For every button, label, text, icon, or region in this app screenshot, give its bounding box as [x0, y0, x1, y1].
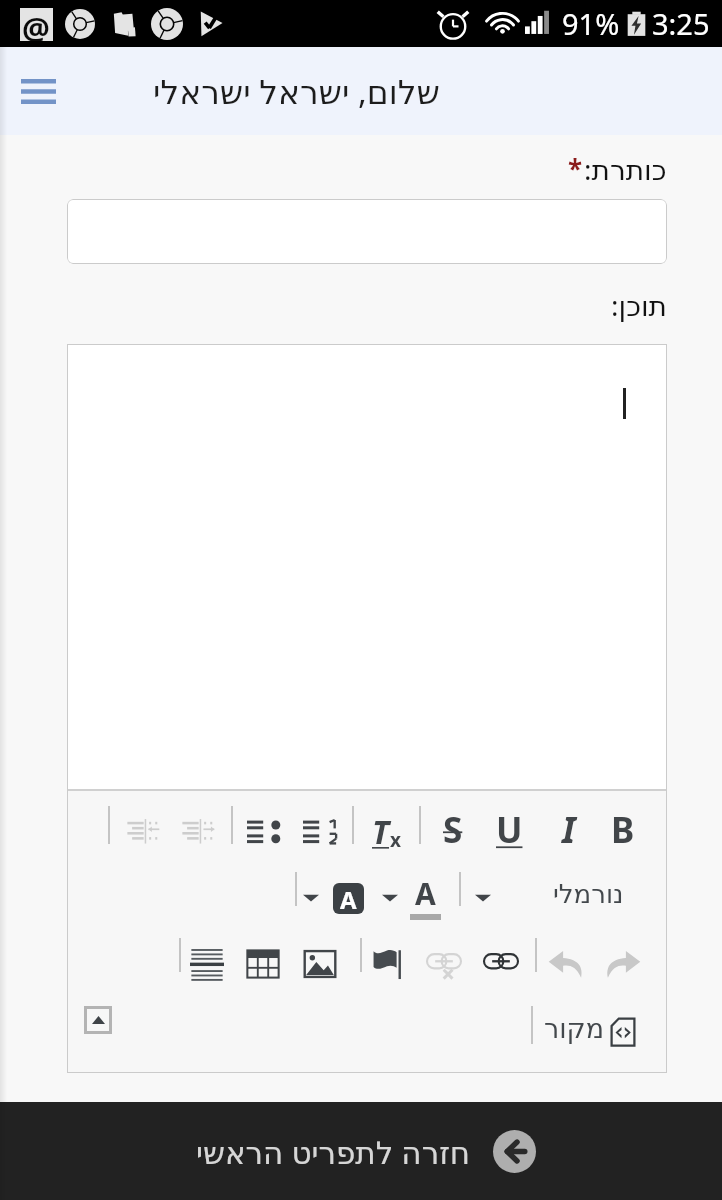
button[interactable]: Strikethrough: [427, 806, 479, 858]
staticText: :תוכן: [611, 286, 667, 324]
button[interactable]: Underline: [483, 806, 535, 858]
staticText: @: [22, 7, 50, 41]
button[interactable]: Unlink: [418, 938, 470, 990]
staticText: 3:25: [652, 4, 710, 43]
other: Back to main menu: [493, 1130, 536, 1173]
button[interactable]: Paragraph format options: [457, 872, 509, 924]
staticText: A: [415, 873, 436, 914]
staticText: מקור: [544, 1013, 605, 1044]
button[interactable]: מקור: [529, 1006, 619, 1050]
button[interactable]: Text color: [399, 872, 451, 924]
button[interactable]: Source: [597, 1006, 649, 1058]
staticText: :כותרת: [584, 150, 667, 188]
staticText: T: [372, 810, 390, 854]
button[interactable]: Redo: [597, 938, 649, 990]
button[interactable]: Open navigation menu: [10, 63, 66, 119]
staticText: שלום, ישראל ישראלי: [153, 69, 440, 114]
button[interactable]: Increase indent: [172, 806, 224, 858]
button[interactable]: Italic: [543, 806, 595, 858]
button[interactable]: Link: [475, 938, 527, 990]
button[interactable]: Image: [294, 938, 346, 990]
staticText: נורמלי: [553, 879, 624, 909]
button[interactable]: Undo: [540, 938, 592, 990]
button[interactable]: Remove format: [360, 806, 412, 858]
button[interactable]: Bulleted list: [239, 806, 291, 858]
staticText: U: [496, 806, 523, 854]
button[interactable]: Decrease indent: [117, 806, 169, 858]
button[interactable]: Bold: [597, 806, 649, 858]
button[interactable]: Background color: [322, 872, 374, 924]
button[interactable]: נורמלי: [528, 872, 648, 916]
button[interactable]: Text color options: [364, 872, 416, 924]
staticText: S: [443, 806, 463, 854]
button[interactable]: Horizontal line: [181, 938, 233, 990]
staticText: I: [562, 806, 576, 854]
staticText: A: [340, 883, 357, 914]
button[interactable]: Table: [237, 938, 289, 990]
button[interactable]: [67, 199, 667, 264]
staticText: x: [390, 827, 401, 853]
staticText: *: [568, 151, 583, 186]
button[interactable]: Numbered list: [295, 806, 347, 858]
staticText: 91%: [562, 4, 620, 43]
button[interactable]: Anchor: [361, 938, 413, 990]
staticText: B: [611, 806, 635, 854]
button[interactable]: חזרה לתפריט הראשי: [188, 1122, 544, 1181]
staticText: חזרה לתפריט הראשי: [196, 1131, 471, 1173]
button[interactable]: Background color options: [285, 872, 337, 924]
button[interactable]: Collapse toolbar: [84, 1006, 112, 1034]
